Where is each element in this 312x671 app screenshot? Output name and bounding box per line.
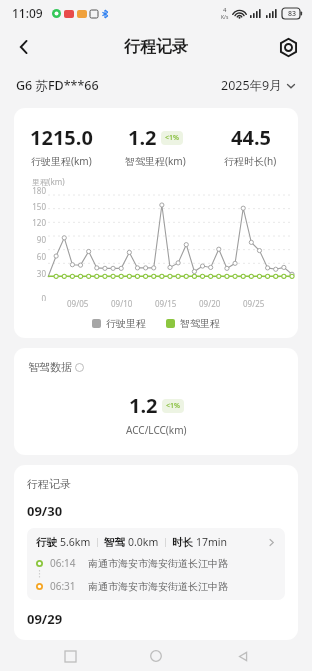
staticText: 南通市海安市海安街道长江中路 [88, 580, 228, 593]
staticText: 1215.0 [30, 124, 93, 151]
staticText: 83 [288, 9, 297, 19]
staticText: 0 [41, 293, 46, 301]
staticText: 17min [196, 535, 228, 549]
button[interactable]: Settings [270, 29, 306, 65]
staticText: G6 苏FD***66 [16, 77, 99, 94]
staticText: 行驶 [36, 535, 60, 549]
staticText: 4 [223, 6, 227, 14]
button[interactable]: 行驶 [27, 528, 285, 600]
staticText: 09/25 [243, 298, 265, 309]
staticText: 09/30 [27, 502, 63, 520]
staticText: 智驾里程 [180, 317, 220, 330]
staticText: 2025年9月 [221, 77, 282, 94]
staticText: 1.2 [129, 392, 158, 419]
staticText: 南通市海安市海安街道长江中路 [88, 557, 228, 570]
staticText: 09/05 [67, 298, 89, 309]
staticText: 智驾里程(km) [125, 154, 186, 168]
staticText: 智驾 [104, 535, 128, 549]
button[interactable]: Recents [53, 641, 87, 671]
staticText: 智驾数据 [28, 360, 72, 374]
staticText: 里程(km) [32, 176, 65, 187]
button[interactable]: Back [6, 29, 42, 65]
staticText: 行程记录 [124, 37, 188, 57]
staticText: 44.5 [231, 124, 271, 151]
staticText: 行程时长(h) [224, 154, 277, 168]
button[interactable]: Home [139, 641, 173, 671]
staticText: 行驶里程 [106, 317, 146, 330]
staticText: 09/10 [111, 298, 133, 309]
button[interactable]: 智驾数据 [28, 360, 84, 374]
staticText: 120 [32, 217, 46, 228]
staticText: 06:14 [50, 556, 76, 570]
staticText: 150 [32, 201, 46, 212]
staticText: 0.0km [128, 535, 159, 549]
staticText: 时长 [172, 535, 196, 549]
staticText: 06:31 [50, 579, 76, 593]
staticText: 09/15 [155, 298, 177, 309]
staticText: 行程记录 [27, 477, 71, 491]
staticText: 5.6km [60, 535, 91, 549]
staticText: <1% [166, 401, 180, 411]
staticText: 60 [36, 251, 46, 262]
staticText: 1.2 [128, 124, 157, 151]
staticText: ACC/LCC(km) [126, 423, 187, 437]
button[interactable]: 2025年9月 [221, 77, 296, 94]
button[interactable]: Back [226, 641, 260, 671]
staticText: <1% [165, 133, 179, 143]
staticText: 行驶里程(km) [31, 154, 92, 168]
staticText: K/s [221, 14, 229, 21]
staticText: 90 [36, 234, 46, 245]
staticText: 09/20 [199, 298, 221, 309]
staticText: 30 [36, 268, 46, 279]
staticText: 11:09 [12, 5, 43, 21]
staticText: 180 [32, 185, 46, 196]
staticText: 09/29 [27, 610, 63, 628]
